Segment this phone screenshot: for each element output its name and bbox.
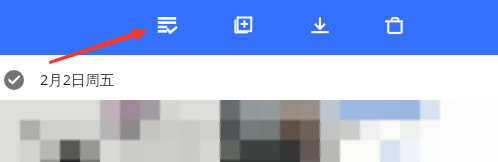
button[interactable]: 2月2日周五 bbox=[0, 55, 498, 100]
button[interactable]: Add to album bbox=[221, 3, 265, 47]
button[interactable]: Delete bbox=[372, 3, 416, 47]
button[interactable] bbox=[0, 100, 498, 162]
button[interactable]: Select all bbox=[145, 3, 189, 47]
staticText: 2月2日周五 bbox=[40, 69, 115, 89]
button[interactable]: Download bbox=[298, 3, 342, 47]
